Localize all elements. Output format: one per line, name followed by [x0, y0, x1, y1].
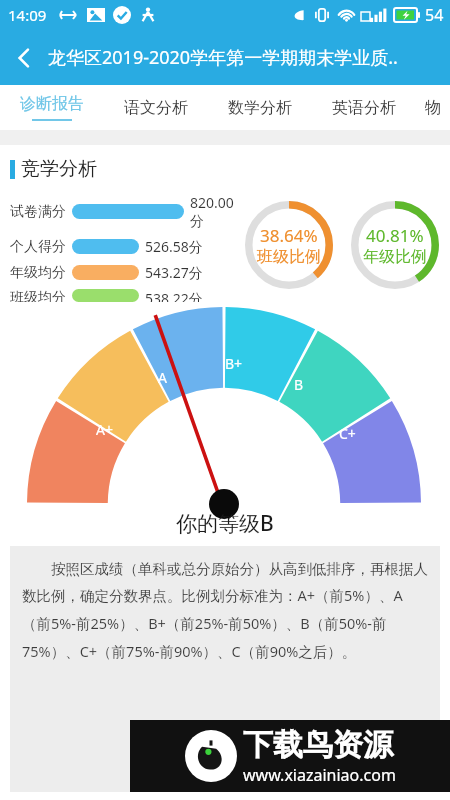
staticText: 年级均分: [10, 264, 66, 282]
staticText: 40.81%: [366, 224, 424, 247]
staticText: C+: [339, 424, 356, 443]
staticText: 语文分析: [124, 98, 188, 118]
button[interactable]: 数学分析: [208, 85, 312, 130]
staticText: 年级比例: [363, 247, 427, 267]
staticText: 下载鸟资源: [243, 726, 393, 764]
staticText: 诊断报告: [20, 94, 84, 114]
staticText: 54: [425, 4, 444, 26]
staticText: A+: [96, 420, 113, 439]
button[interactable]: 诊断报告: [0, 85, 104, 130]
staticText: 你的等级B: [176, 509, 274, 538]
staticText: B+: [225, 354, 243, 373]
button[interactable]: 物: [416, 85, 450, 130]
staticText: 14:09: [8, 5, 47, 25]
staticText: C: [362, 500, 371, 519]
staticText: 38.64%: [260, 224, 318, 247]
staticText: 班级比例: [257, 247, 321, 267]
staticText: 英语分析: [332, 98, 396, 118]
staticText: 数学分析: [228, 98, 292, 118]
staticText: 竞学分析: [21, 157, 97, 181]
button[interactable]: Back: [0, 34, 48, 82]
staticText: 个人得分: [10, 238, 66, 256]
staticText: 526.58分: [145, 237, 203, 256]
staticText: B: [294, 375, 304, 394]
staticText: 物: [425, 98, 441, 118]
button[interactable]: 语文分析: [104, 85, 208, 130]
staticText: 试卷满分: [10, 203, 66, 221]
staticText: www.xiazainiao.com: [243, 764, 396, 786]
staticText: 按照区成绩（单科或总分原始分）从高到低排序，再根据人数比例，确定分数界点。比例划…: [22, 558, 428, 661]
staticText: 班级均分: [10, 289, 66, 302]
button[interactable]: 英语分析: [312, 85, 416, 130]
staticText: 543.27分: [145, 263, 203, 282]
staticText: A: [158, 368, 167, 387]
staticText: 龙华区2019-2020学年第一学期期末学业质..: [48, 45, 398, 70]
staticText: 820.00分: [190, 193, 240, 230]
staticText: 538.22分: [145, 289, 203, 302]
